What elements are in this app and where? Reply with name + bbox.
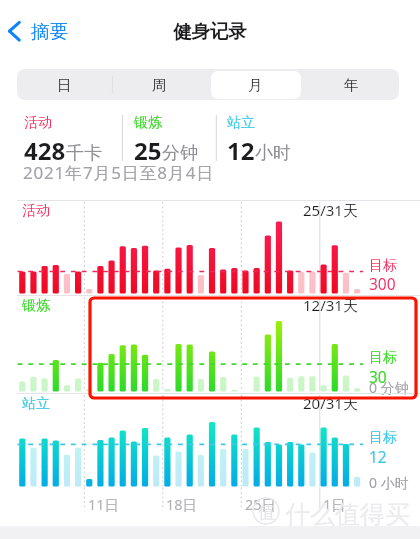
staticText: 站立 <box>227 114 255 132</box>
staticText: 20/31天 <box>303 393 358 413</box>
staticText: 目标 <box>369 349 397 367</box>
staticText: 18日 <box>166 494 198 514</box>
staticText: 锻炼 <box>134 114 162 132</box>
button[interactable]: 日 <box>17 69 112 100</box>
staticText: 0 小时 <box>369 473 409 492</box>
staticText: 25 <box>134 134 162 167</box>
staticText: 目标 <box>369 429 397 447</box>
staticText: 0 分钟 <box>369 378 409 397</box>
staticText: 11日 <box>88 494 120 514</box>
staticText: 25/31天 <box>303 200 358 220</box>
staticText: 12/31天 <box>303 295 358 315</box>
staticText: 千卡 <box>66 142 102 165</box>
staticText: 什么值得买 <box>285 499 410 530</box>
staticText: 摘要 <box>31 20 68 43</box>
staticText: 目标 <box>369 257 397 275</box>
staticText: 25日 <box>245 494 277 514</box>
staticText: 428 <box>24 134 66 167</box>
staticText: 健身记录 <box>173 20 247 43</box>
button[interactable]: 年 <box>303 69 399 100</box>
staticText: 300 <box>369 273 396 294</box>
staticText: 12 <box>227 134 255 167</box>
staticText: 1日 <box>323 494 346 514</box>
button[interactable]: 月 <box>207 69 303 100</box>
staticText: 站立 <box>22 395 50 413</box>
staticText: 2021年7月5日至8月4日 <box>23 161 214 184</box>
staticText: 值 <box>258 502 275 523</box>
staticText: 日 <box>57 76 72 94</box>
staticText: 分钟 <box>162 142 198 165</box>
staticText: 12 <box>369 446 387 467</box>
staticText: 小时 <box>255 142 291 165</box>
staticText: 锻炼 <box>22 297 50 315</box>
staticText: 周 <box>152 76 167 94</box>
button[interactable]: 返回 摘要 <box>4 14 78 50</box>
staticText: 活动 <box>24 114 52 132</box>
staticText: 月 <box>248 76 263 94</box>
staticText: 年 <box>344 76 359 94</box>
staticText: 30 <box>369 366 387 387</box>
staticText: 活动 <box>22 202 50 220</box>
button[interactable]: 周 <box>112 69 207 100</box>
